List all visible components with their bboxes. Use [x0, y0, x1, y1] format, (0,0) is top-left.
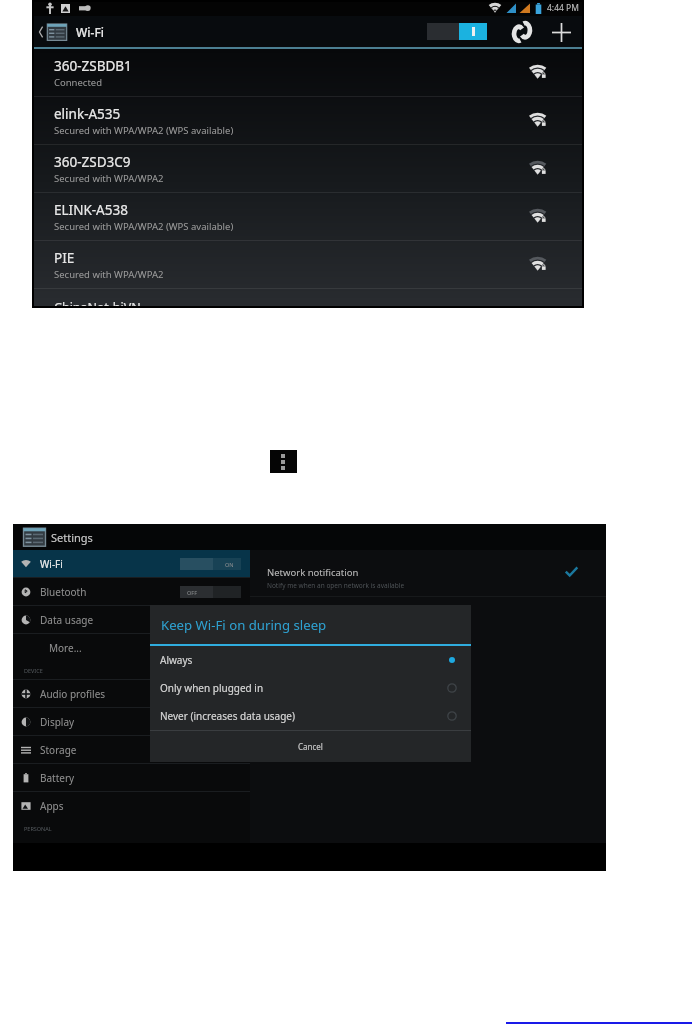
- staticText: Audio profiles: [40, 687, 241, 701]
- staticText: Secured with WPA/WPA2: [54, 268, 164, 281]
- staticText: More...: [49, 641, 241, 655]
- button[interactable]: Wi-Fi on: [427, 23, 487, 40]
- staticText: ON: [225, 561, 234, 568]
- button[interactable]: 360-ZSBDB1: [32, 49, 584, 96]
- staticText: Data usage: [40, 613, 241, 627]
- button[interactable]: Storage: [13, 736, 250, 763]
- button[interactable]: Wi-Fi switch: [180, 558, 241, 570]
- button[interactable]: Only when plugged in: [150, 674, 471, 702]
- button[interactable]: PIE: [32, 241, 584, 288]
- button[interactable]: WPS push button: [509, 19, 535, 45]
- button[interactable]: Add network: [548, 19, 574, 45]
- button[interactable]: elink-A535: [32, 97, 584, 144]
- button[interactable]: 360-ZSD3C9: [32, 145, 584, 192]
- staticText: Apps: [40, 799, 241, 813]
- staticText: Connected: [54, 76, 103, 89]
- staticText: 360-ZSBDB1: [54, 57, 132, 75]
- staticText: Battery: [40, 771, 241, 785]
- staticText: ELINK-A538: [54, 201, 128, 219]
- staticText: Secured with WPA/WPA2: [54, 172, 164, 185]
- button[interactable]: Wi-Fi: [13, 550, 250, 577]
- staticText: Wi-Fi: [40, 557, 180, 571]
- button[interactable]: ELINK-A538: [32, 193, 584, 240]
- staticText: Only when plugged in: [160, 681, 447, 695]
- staticText: elink-A535: [54, 105, 121, 123]
- staticText: Always: [160, 653, 447, 667]
- staticText: Cancel: [298, 741, 323, 752]
- staticText: Keep Wi-Fi on during sleep: [161, 616, 327, 634]
- button[interactable]: Never (increases data usage): [150, 702, 471, 730]
- button[interactable]: Navigate up: [32, 16, 72, 47]
- button[interactable]: Cancel: [150, 731, 471, 762]
- button[interactable]: Battery: [13, 764, 250, 791]
- staticText: Secured with WPA/WPA2 (WPS available): [54, 124, 234, 137]
- staticText: Settings: [51, 530, 93, 545]
- staticText: PIE: [54, 249, 75, 267]
- button[interactable]: Data usage: [13, 606, 250, 633]
- staticText: DEVICE: [24, 667, 43, 674]
- button[interactable]: Audio profiles: [13, 680, 250, 707]
- staticText: OFF: [187, 589, 198, 596]
- button[interactable]: Network notification: [250, 550, 606, 596]
- button[interactable]: Bluetooth: [13, 578, 250, 605]
- button[interactable]: Display: [13, 708, 250, 735]
- staticText: Notify me when an open network is availa…: [267, 581, 405, 590]
- staticText: 4:44 PM: [547, 2, 579, 14]
- button[interactable]: Always: [150, 646, 471, 674]
- staticText: Display: [40, 715, 241, 729]
- staticText: Wi-Fi: [76, 24, 104, 40]
- staticText: Secured with WPA/WPA2 (WPS available): [54, 220, 234, 233]
- staticText: PERSONAL: [24, 825, 52, 832]
- button[interactable]: Apps: [13, 792, 250, 819]
- staticText: Never (increases data usage): [160, 709, 447, 723]
- staticText: ChinaNet-hiVN: [54, 299, 141, 308]
- button[interactable]: Bluetooth switch: [180, 586, 241, 598]
- staticText: Storage: [40, 743, 241, 757]
- staticText: 360-ZSD3C9: [54, 153, 131, 171]
- staticText: Network notification: [267, 566, 359, 579]
- button[interactable]: More...: [13, 634, 250, 661]
- button[interactable]: More options: [270, 450, 297, 473]
- staticText: Bluetooth: [40, 585, 180, 599]
